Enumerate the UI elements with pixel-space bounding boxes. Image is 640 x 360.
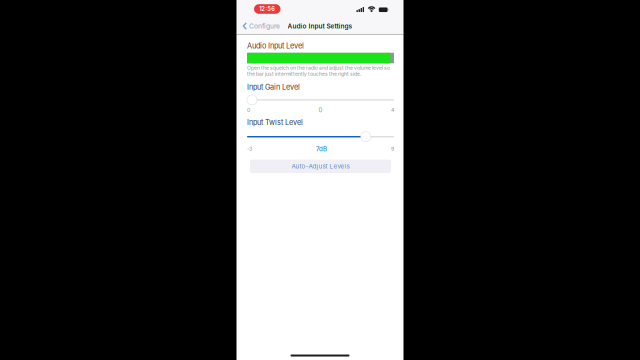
staticText: Auto-Adjust Levels [291, 162, 349, 170]
staticText: 0 [247, 107, 250, 113]
button[interactable]: Configure [236, 18, 284, 34]
staticText: Audio Input Settings [287, 22, 352, 30]
staticText: 9 [391, 146, 394, 152]
staticText: Configure [249, 22, 280, 30]
staticText: 0 [318, 106, 322, 114]
staticText: 12:56 [259, 5, 275, 12]
staticText: 4 [391, 107, 394, 113]
staticText: Open the squelch on the radio and adjust… [247, 65, 390, 77]
staticText: 7dB [316, 145, 327, 153]
button[interactable]: Auto-Adjust Levels [250, 160, 391, 173]
staticText: -3 [247, 146, 252, 152]
staticText: Input Gain Level [247, 82, 300, 91]
staticText: Input Twist Level [247, 118, 303, 127]
staticText: Audio Input Level [247, 41, 304, 50]
